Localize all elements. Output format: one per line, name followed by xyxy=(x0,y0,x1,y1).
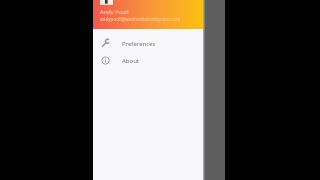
staticText: About xyxy=(122,57,140,65)
button[interactable]: Preferences xyxy=(93,35,203,52)
staticText: andypooit@androidtutorialpoint.com xyxy=(100,16,181,22)
other: Account photo xyxy=(100,0,113,5)
staticText: Andy Pooit xyxy=(100,8,129,16)
button[interactable]: About xyxy=(93,52,203,69)
button[interactable]: Close navigation drawer xyxy=(203,0,225,180)
button[interactable]: Account photo xyxy=(93,0,203,29)
staticText: Preferences xyxy=(122,40,156,48)
